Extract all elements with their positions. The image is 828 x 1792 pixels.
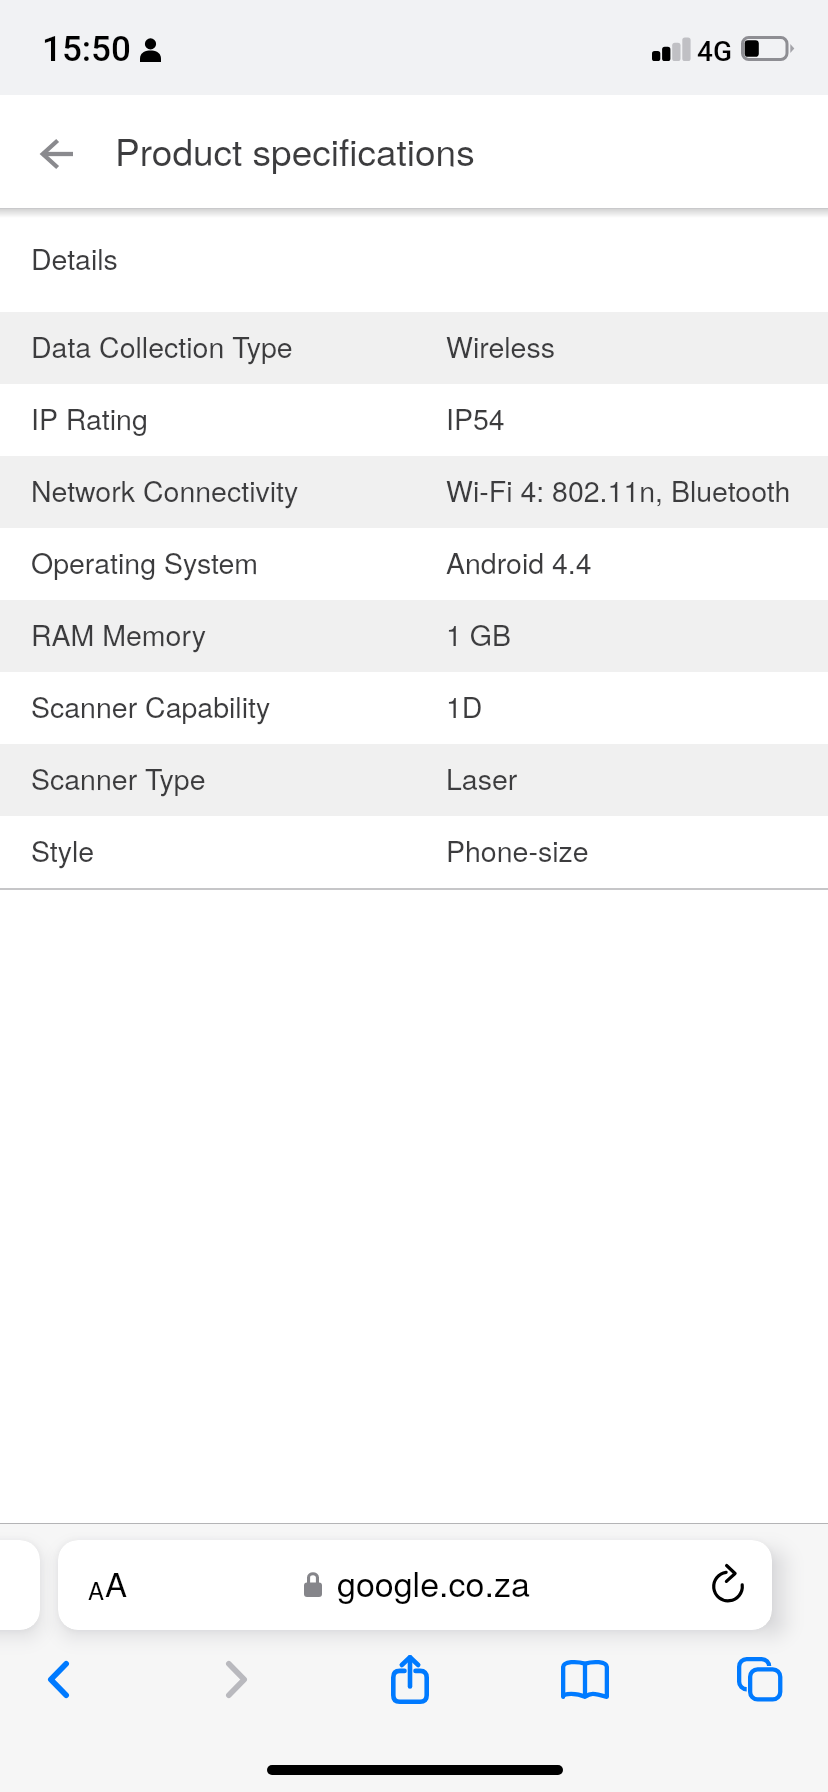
staticText: Android 4.4 — [446, 541, 592, 582]
staticText: Wireless — [446, 325, 555, 366]
staticText: Details — [31, 237, 118, 278]
staticText: 4G — [697, 35, 732, 68]
staticText: A — [105, 1559, 128, 1606]
button[interactable]: Page settings — [58, 1540, 772, 1630]
staticText: Wi-Fi 4: 802.11n, Bluetooth — [446, 469, 791, 510]
staticText: Scanner Capability — [31, 685, 271, 726]
staticText: 15:50 — [42, 29, 131, 70]
staticText: IP54 — [446, 397, 505, 438]
staticText: Data Collection Type — [31, 325, 293, 366]
button[interactable]: Share — [355, 1635, 465, 1723]
staticText: Scanner Type — [31, 757, 206, 798]
button[interactable]: Back — [3, 1635, 113, 1723]
button[interactable]: Forward — [181, 1635, 291, 1723]
staticText: Network Connectivity — [31, 469, 299, 510]
staticText: 1 GB — [446, 613, 511, 654]
staticText: Style — [31, 829, 95, 870]
staticText: RAM Memory — [31, 613, 206, 654]
staticText: Phone-size — [446, 829, 589, 870]
button[interactable]: Tabs — [705, 1635, 815, 1723]
button[interactable]: Page settings — [66, 1545, 148, 1625]
button[interactable]: Reload page — [702, 1559, 754, 1611]
staticText: Product specifications — [115, 124, 475, 177]
staticText: Operating System — [31, 541, 259, 582]
button[interactable]: Back — [14, 120, 98, 182]
staticText: IP Rating — [31, 397, 148, 438]
button[interactable]: Bookmarks — [530, 1635, 640, 1723]
staticText: A — [88, 1572, 105, 1606]
staticText: Laser — [446, 757, 518, 798]
staticText: 1D — [446, 685, 483, 726]
staticText: google.co.za — [337, 1558, 530, 1607]
